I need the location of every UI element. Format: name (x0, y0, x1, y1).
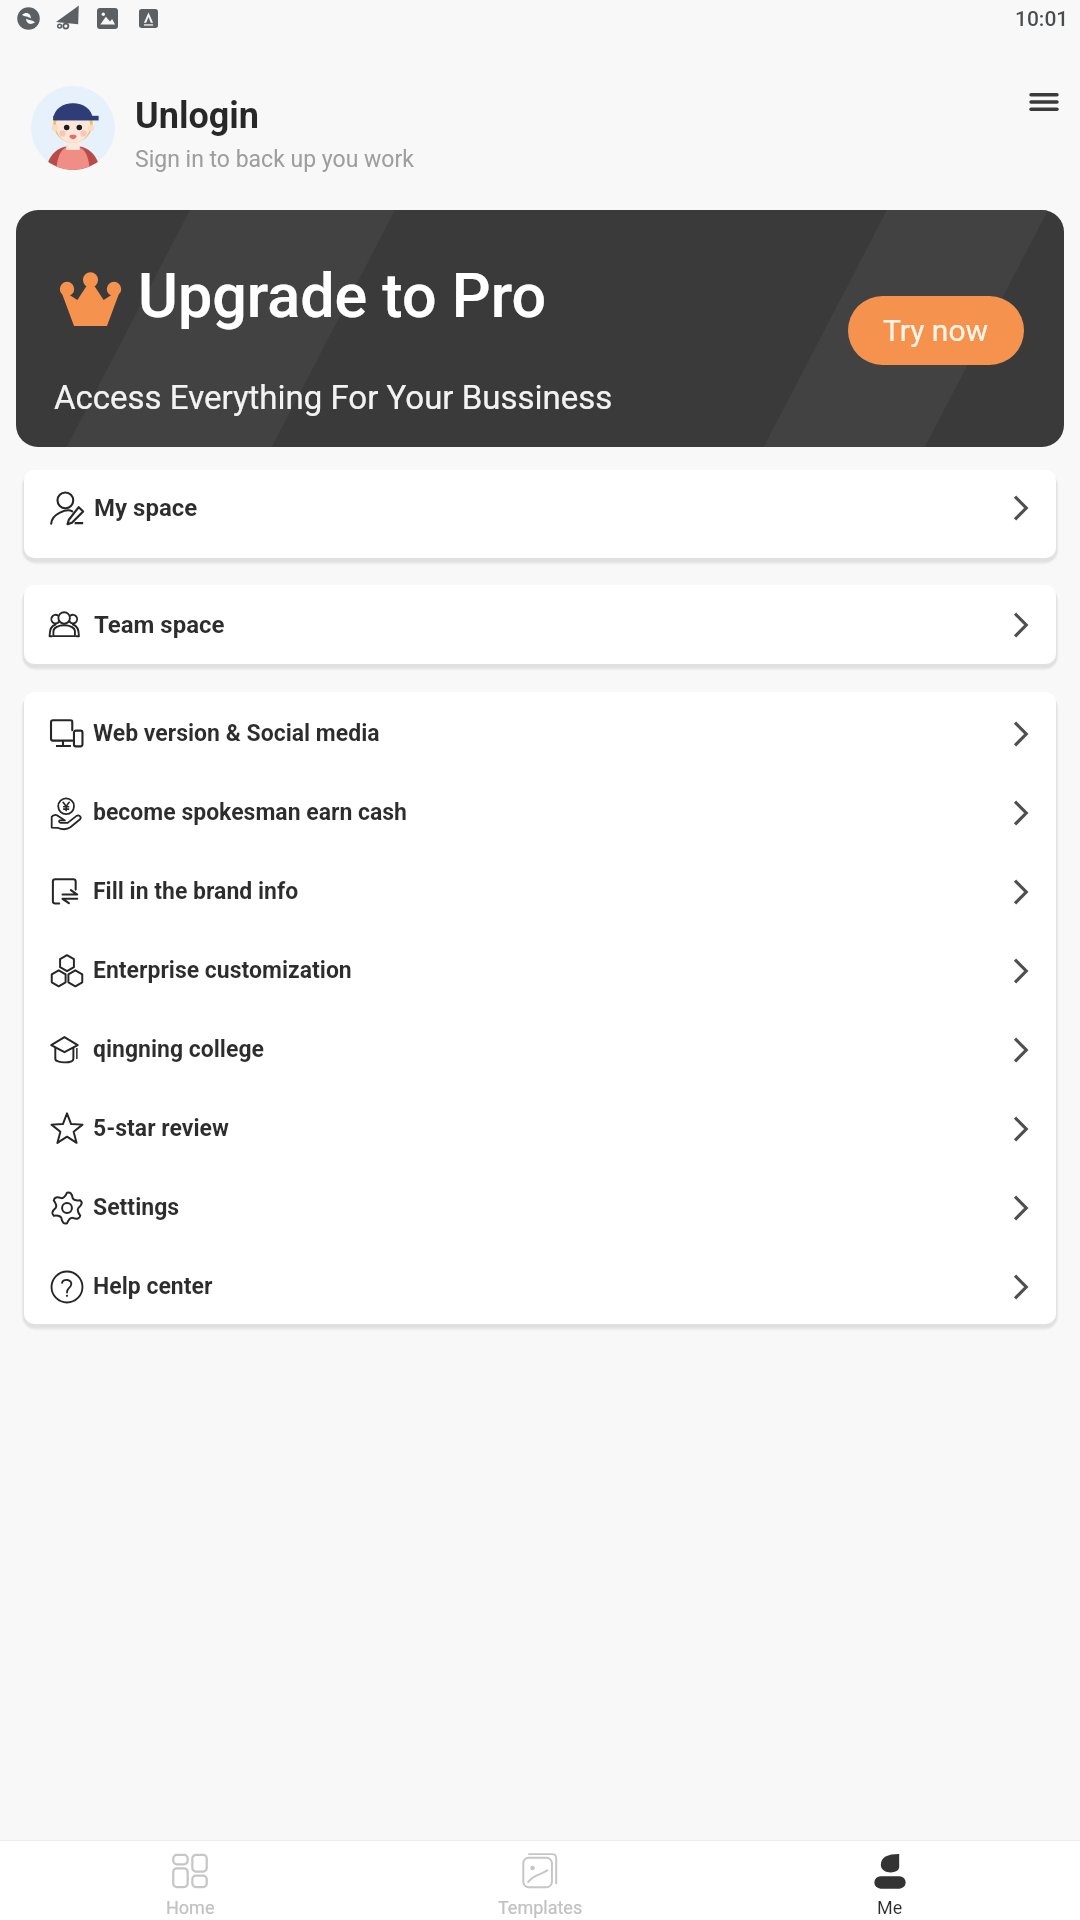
staticText: qingning college (93, 1036, 264, 1063)
staticText: Home (166, 1897, 215, 1918)
button[interactable]: Home (15, 1843, 365, 1918)
staticText: Team space (94, 611, 225, 639)
staticText: Settings (93, 1194, 180, 1221)
button[interactable]: Enterprise customization (24, 929, 1056, 1008)
staticText: Upgrade to Pro (138, 260, 547, 331)
button[interactable]: Web version & Social media (24, 692, 1056, 771)
staticText: become spokesman earn cash (93, 799, 408, 826)
staticText: 5-star review (93, 1115, 229, 1142)
button[interactable]: Fill in the brand info (24, 850, 1056, 929)
staticText: Web version & Social media (93, 720, 380, 747)
button[interactable]: Try now (848, 296, 1024, 365)
staticText: Me (877, 1897, 903, 1918)
staticText: Try now (883, 313, 989, 348)
button[interactable]: My space (24, 470, 1056, 558)
button[interactable]: Upgrade to Pro (16, 210, 1064, 447)
staticText: Fill in the brand info (93, 878, 299, 905)
staticText: Sign in to back up you work (135, 146, 414, 173)
button[interactable]: Settings (24, 1166, 1056, 1245)
button[interactable]: Menu (1018, 76, 1070, 128)
button[interactable]: Templates (365, 1843, 715, 1918)
staticText: Enterprise customization (93, 957, 352, 984)
staticText: Access Everything For Your Bussiness (54, 378, 613, 417)
staticText: 10:01 (1015, 7, 1069, 32)
button[interactable]: become spokesman earn cash (24, 771, 1056, 850)
staticText: Help center (93, 1273, 213, 1300)
button[interactable]: Me (715, 1843, 1065, 1918)
button[interactable]: qingning college (24, 1008, 1056, 1087)
staticText: Templates (498, 1897, 583, 1918)
staticText: My space (94, 494, 198, 522)
button[interactable]: Team space (24, 585, 1056, 664)
button[interactable]: 5-star review (24, 1087, 1056, 1166)
button[interactable]: Help center (24, 1245, 1056, 1324)
staticText: Unlogin (135, 95, 260, 137)
